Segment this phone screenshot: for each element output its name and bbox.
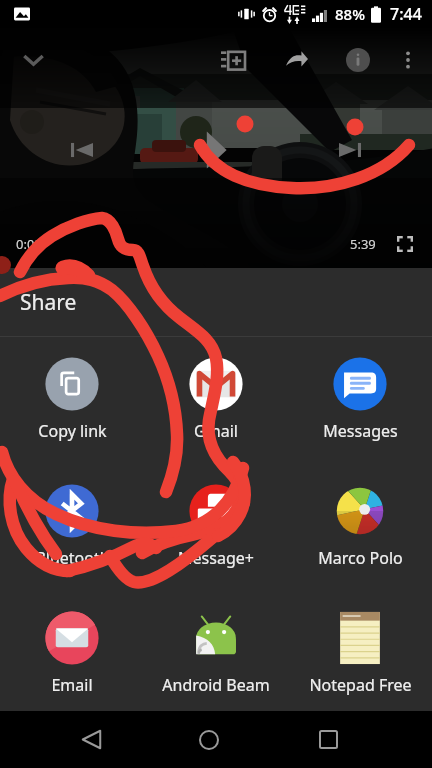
- button[interactable]: Play: [190, 124, 242, 176]
- button[interactable]: Android Beam: [144, 591, 288, 711]
- staticText: Notepad Free: [309, 674, 412, 696]
- button[interactable]: Message+: [144, 464, 288, 591]
- button[interactable]: Back: [62, 711, 120, 768]
- button[interactable]: More options: [388, 40, 428, 80]
- staticText: Copy link: [38, 420, 107, 442]
- button[interactable]: Share: [275, 38, 319, 82]
- button[interactable]: Collapse: [11, 38, 55, 82]
- staticText: Messages: [323, 420, 398, 442]
- button[interactable]: Previous: [59, 127, 105, 173]
- button[interactable]: Messages: [288, 337, 432, 464]
- button[interactable]: Recent apps: [299, 711, 357, 768]
- button[interactable]: Bluetooth: [0, 464, 144, 591]
- button[interactable]: Details: [336, 38, 380, 82]
- button[interactable]: Add to library: [211, 38, 255, 82]
- staticText: Share: [20, 288, 77, 317]
- button[interactable]: Marco Polo: [288, 464, 432, 591]
- staticText: Bluetooth: [35, 547, 110, 569]
- staticText: 7:44: [390, 3, 422, 25]
- button[interactable]: Fullscreen: [392, 231, 418, 257]
- staticText: Gmail: [194, 420, 238, 442]
- button[interactable]: Email: [0, 591, 144, 711]
- staticText: Email: [51, 674, 93, 696]
- staticText: Android Beam: [162, 674, 270, 696]
- staticText: 5:39: [350, 235, 376, 253]
- button[interactable]: Notepad Free: [288, 591, 432, 711]
- button[interactable]: Gmail: [144, 337, 288, 464]
- button[interactable]: Next: [327, 127, 373, 173]
- staticText: Marco Polo: [318, 547, 403, 569]
- button[interactable]: Home: [180, 711, 238, 768]
- staticText: Message+: [178, 547, 254, 569]
- staticText: 0:08: [16, 235, 42, 253]
- staticText: 88%: [335, 4, 365, 24]
- button[interactable]: Copy link: [0, 337, 144, 464]
